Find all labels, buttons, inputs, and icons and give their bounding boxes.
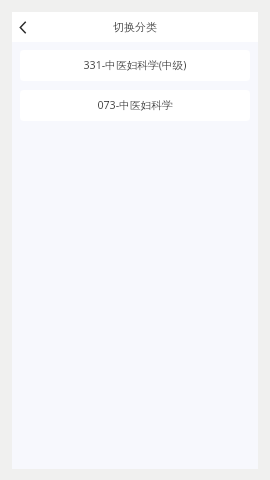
button[interactable]: 331-中医妇科学(中级): [20, 50, 250, 81]
staticText: 331-中医妇科学(中级): [83, 58, 187, 73]
staticText: 切换分类: [113, 20, 157, 34]
staticText: 073-中医妇科学: [97, 98, 173, 113]
button[interactable]: Back: [12, 12, 34, 42]
button[interactable]: 073-中医妇科学: [20, 90, 250, 121]
